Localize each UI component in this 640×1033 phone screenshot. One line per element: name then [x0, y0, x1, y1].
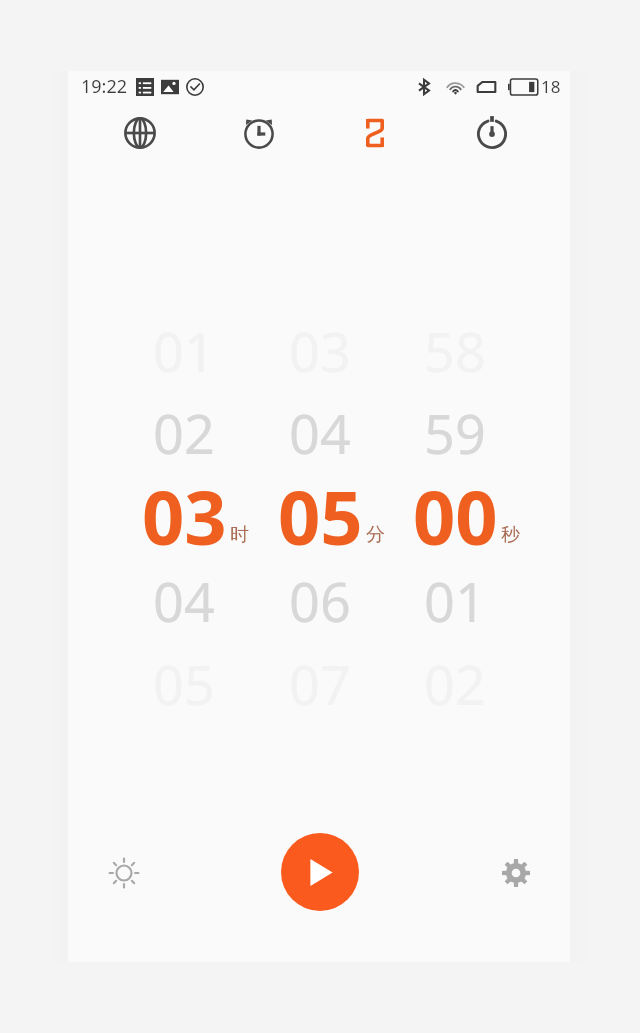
- button[interactable]: 01: [387, 559, 523, 643]
- staticText: 02: [153, 396, 215, 470]
- staticText: 04: [153, 564, 215, 638]
- button[interactable]: Alarm: [230, 104, 288, 162]
- button[interactable]: 02: [116, 391, 252, 475]
- button[interactable]: 03: [116, 466, 252, 550]
- button[interactable]: 06: [252, 559, 388, 643]
- staticText: 时: [230, 523, 249, 547]
- button[interactable]: 04: [116, 559, 252, 643]
- button[interactable]: 05: [252, 466, 388, 550]
- staticText: 分: [366, 523, 385, 547]
- staticText: 04: [289, 396, 351, 470]
- staticText: 01: [424, 564, 486, 638]
- staticText: 05: [153, 647, 215, 721]
- staticText: 06: [289, 564, 351, 638]
- button[interactable]: 00: [387, 466, 523, 550]
- button[interactable]: Stopwatch: [463, 104, 521, 162]
- button[interactable]: World clock: [111, 104, 169, 162]
- staticText: 18: [541, 75, 561, 98]
- staticText: 58: [424, 314, 486, 388]
- button[interactable]: Timer: [346, 104, 404, 162]
- staticText: 03: [142, 466, 227, 550]
- staticText: 05: [278, 466, 363, 550]
- button[interactable]: 04: [252, 391, 388, 475]
- button[interactable]: Brightness: [96, 845, 152, 901]
- button[interactable]: Settings: [488, 845, 544, 901]
- staticText: 59: [424, 396, 486, 470]
- button[interactable]: 59: [387, 391, 523, 475]
- staticText: 00: [413, 466, 498, 550]
- staticText: 秒: [501, 523, 520, 547]
- staticText: 19:22: [81, 74, 128, 99]
- button[interactable]: Start: [281, 833, 359, 911]
